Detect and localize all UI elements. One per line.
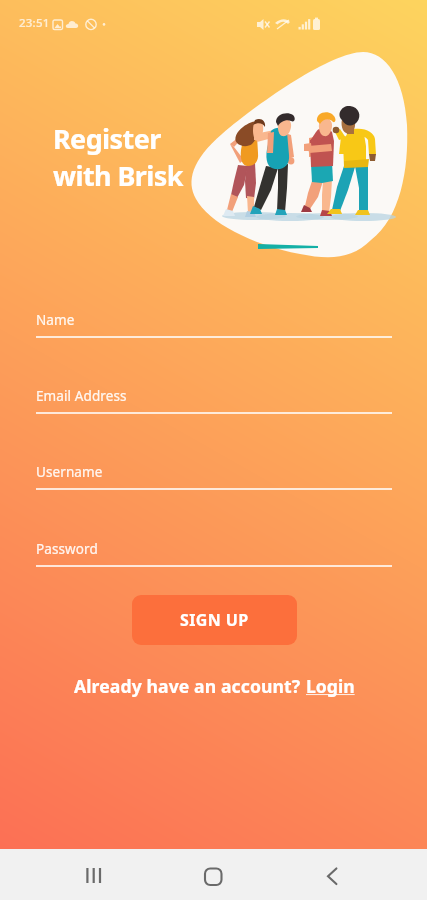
staticText: Username bbox=[36, 463, 103, 481]
staticText: Login bbox=[306, 674, 355, 698]
staticText: Password bbox=[36, 540, 98, 558]
button[interactable]: Recent apps bbox=[70, 852, 117, 899]
staticText: Already have an account? bbox=[74, 674, 306, 698]
staticText: Email Address bbox=[36, 387, 127, 405]
button[interactable]: Email Address bbox=[36, 384, 392, 414]
button[interactable]: Login bbox=[306, 674, 355, 698]
staticText: 23:51 bbox=[19, 15, 50, 31]
button[interactable]: Home bbox=[190, 852, 237, 899]
staticText: Register bbox=[53, 120, 161, 157]
staticText: Name bbox=[36, 311, 75, 329]
button[interactable]: Username bbox=[36, 460, 392, 490]
button[interactable]: SIGN UP bbox=[132, 595, 297, 645]
staticText: SIGN UP bbox=[180, 609, 249, 631]
button[interactable]: Password bbox=[36, 537, 392, 567]
staticText: with Brisk bbox=[53, 157, 183, 194]
button[interactable]: Name bbox=[36, 308, 392, 338]
button[interactable]: Back bbox=[309, 852, 356, 899]
